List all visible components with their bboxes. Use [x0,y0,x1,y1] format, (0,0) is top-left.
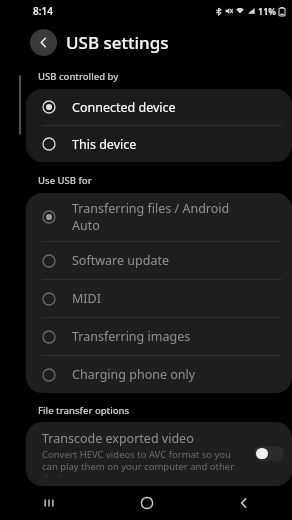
staticText: Transferring files / Android [72,200,230,217]
staticText: Transcode exported video [42,430,194,447]
staticText: Convert HEVC videos to AVC format so you… [42,448,246,476]
staticText: Use USB for [38,174,92,187]
staticText: 11% [258,5,276,17]
staticText: This device [72,136,137,153]
staticText: Software update [72,252,169,269]
button[interactable]: Charging phone only [26,356,292,393]
button[interactable]: Transferring images [26,318,292,355]
button[interactable]: Transferring files / Android [26,193,292,241]
staticText: USB controlled by [38,70,119,83]
staticText: Connected device [72,99,176,116]
button[interactable]: Back [195,486,292,520]
staticText: Transferring images [72,328,191,345]
staticText: Charging phone only [72,366,196,383]
button[interactable]: MIDI [26,280,292,317]
button[interactable]: Home [98,486,195,520]
button[interactable]: Back [30,29,57,56]
button[interactable]: Software update [26,242,292,279]
staticText: MIDI [72,290,101,307]
button[interactable]: This device [26,126,292,162]
staticText: File transfer options [38,404,130,417]
button[interactable]: Transcode exported video [26,422,292,486]
button[interactable]: Connected device [26,89,292,125]
staticText: 8:14 [33,4,53,18]
staticText: USB settings [66,31,169,54]
staticText: Auto [72,217,100,234]
button[interactable]: Recents [0,486,98,520]
